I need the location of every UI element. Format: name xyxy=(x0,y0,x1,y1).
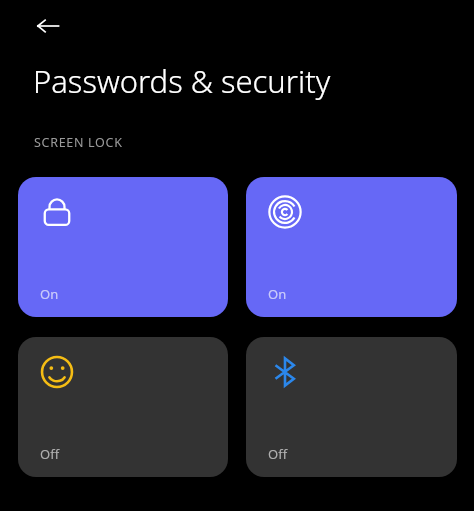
button[interactable]: Unlock with Bluetooth device, Off xyxy=(246,337,457,477)
staticText: Passwords & security xyxy=(33,60,331,102)
staticText: On xyxy=(268,285,287,303)
staticText: Off xyxy=(40,445,60,463)
staticText: SCREEN LOCK xyxy=(34,134,123,151)
button[interactable]: Screen lock, On xyxy=(18,177,228,317)
staticText: On xyxy=(40,285,59,303)
button[interactable]: Fingerprint unlock, On xyxy=(246,177,457,317)
staticText: Off xyxy=(268,445,288,463)
button[interactable]: Face unlock, Off xyxy=(18,337,228,477)
button[interactable]: Back xyxy=(26,4,70,48)
